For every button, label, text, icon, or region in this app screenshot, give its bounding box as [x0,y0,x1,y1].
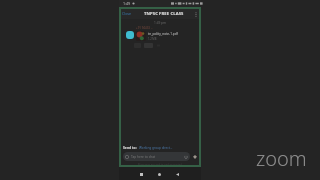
staticText: Messages are end-to-end encrypted [120,163,200,166]
staticText: Tap here to chat [131,155,156,159]
button[interactable]: Back [175,172,180,177]
button[interactable]: Recents [139,172,144,177]
button[interactable]: Send [192,154,198,160]
staticText: 1.2 MB [148,37,157,41]
staticText: 1:49 pm [120,21,200,25]
staticText: 1:49 [123,1,131,6]
staticText: TNPSC FREE CLASS [144,11,184,17]
staticText: Send to: [123,145,137,150]
staticText: Close [122,11,132,16]
button[interactable]: More options [192,10,200,18]
staticText: zoom [256,145,307,172]
button[interactable]: Close [120,8,134,19]
staticText: +91 94433 ... [136,26,154,30]
staticText: tn_polity_note-1.pdf [148,32,178,36]
staticText: Working group direct... [139,146,173,150]
button[interactable]: Home [157,172,162,177]
button[interactable]: Tap here to chat [123,152,190,161]
